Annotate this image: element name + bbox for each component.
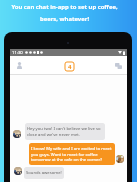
staticText: You can chat in-app to set up coffee, be… xyxy=(11,3,118,22)
button[interactable]: Profile xyxy=(14,60,25,71)
staticText: 11:30 xyxy=(12,50,23,56)
button[interactable]: Home xyxy=(64,61,74,71)
button[interactable]: Messages xyxy=(113,60,124,71)
button[interactable]: I know! My wife and I are excited to mee… xyxy=(29,143,115,165)
staticText: I know! My wife and I are excited to mee… xyxy=(31,146,113,162)
button[interactable]: Hey you two! I can't believe we live so … xyxy=(25,123,105,140)
staticText: Hey you two! I can't believe we live so … xyxy=(27,126,103,137)
button[interactable]: Sounds awesome! xyxy=(24,167,64,179)
staticText: Sounds awesome! xyxy=(26,170,62,176)
staticText: 4 xyxy=(68,63,72,71)
